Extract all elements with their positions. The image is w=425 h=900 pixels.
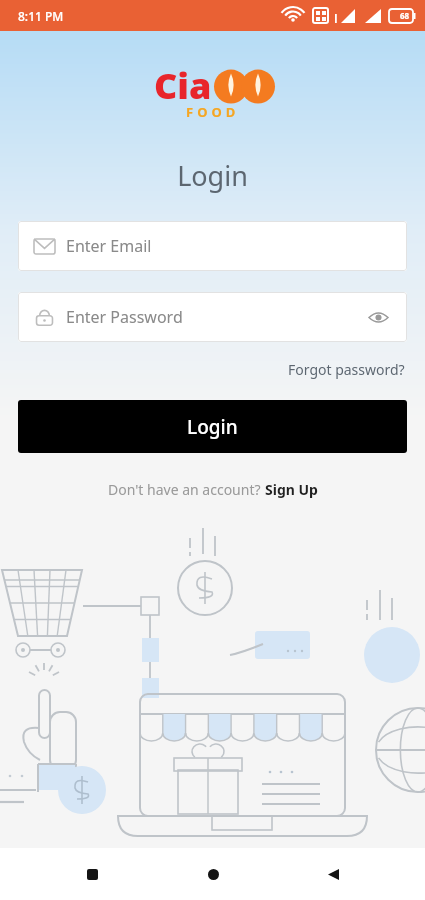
button[interactable]: Enter Email [18,221,407,271]
staticText: Login [187,414,238,440]
button[interactable]: Sign Up [265,480,318,499]
staticText: Enter Email [66,235,152,257]
button[interactable]: Recents [70,852,114,896]
staticText: Enter Password [66,306,183,328]
button[interactable]: Show password [365,304,391,330]
button[interactable]: Home [191,852,235,896]
button[interactable]: Login [18,400,407,453]
button[interactable]: Forgot password? [286,357,407,382]
staticText: Forgot password? [288,360,405,379]
staticText: Cia [154,61,212,110]
staticText: FOOD [186,103,240,121]
staticText: 8:11 PM [18,8,64,24]
staticText: 68 [400,10,410,21]
staticText: Sign Up [265,480,318,499]
button[interactable]: Enter Password [18,292,407,342]
button[interactable]: Back [311,852,355,896]
staticText: Login [0,157,425,194]
staticText: Don't have an account? [108,480,265,499]
